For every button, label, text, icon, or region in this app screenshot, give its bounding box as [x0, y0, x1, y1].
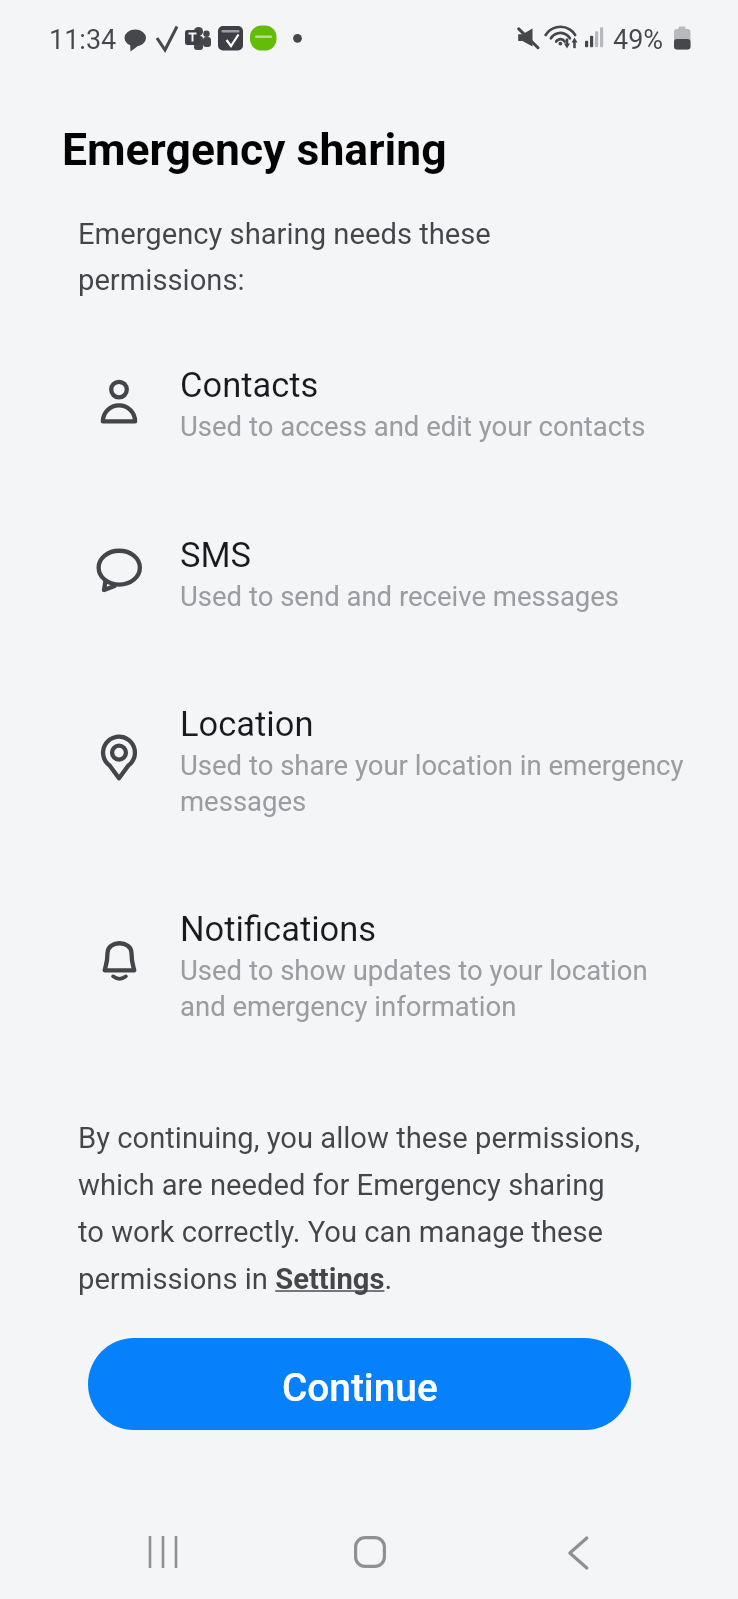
staticText: Used to access and edit your contacts	[180, 410, 646, 442]
staticText: Used to show updates to your location an…	[180, 954, 685, 1022]
staticText: SMS	[180, 535, 252, 575]
button[interactable]: SMS	[0, 535, 738, 612]
staticText: Emergency sharing needs these permission…	[78, 217, 491, 298]
button[interactable]: Contacts	[0, 365, 738, 442]
staticText: Used to send and receive messages	[180, 580, 620, 612]
staticText: Location	[180, 704, 314, 744]
staticText: 49%	[613, 24, 664, 56]
staticText: By continuing, you allow these permissio…	[78, 1121, 738, 1296]
staticText: Contacts	[180, 365, 319, 405]
staticText: Notifications	[180, 909, 377, 949]
button[interactable]: Back	[533, 1508, 623, 1598]
button[interactable]: Notifications	[0, 909, 738, 1022]
staticText: 11:34	[49, 24, 117, 56]
button[interactable]: Home	[325, 1507, 415, 1597]
staticText: Emergency sharing	[62, 124, 447, 176]
button[interactable]: Continue	[88, 1338, 631, 1430]
button[interactable]: Recents	[118, 1507, 208, 1597]
staticText: Continue	[282, 1365, 438, 1410]
button[interactable]: Location	[0, 704, 738, 817]
staticText: Used to share your location in emergency…	[180, 749, 685, 817]
